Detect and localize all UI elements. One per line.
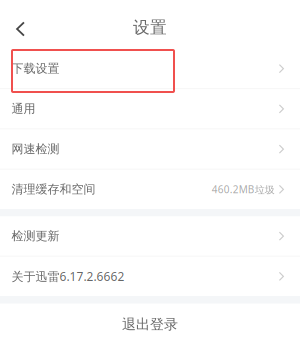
button[interactable]: 关于迅雷6.17.2.6662 xyxy=(0,257,300,296)
staticText: 设置 xyxy=(133,17,167,38)
button[interactable]: 网速检测 xyxy=(0,129,300,169)
button[interactable]: 退出登录 xyxy=(0,303,300,335)
staticText: 通用 xyxy=(11,101,35,116)
button[interactable]: Back xyxy=(0,0,41,53)
staticText: 检测更新 xyxy=(11,229,59,243)
staticText: 清理缓存和空间 xyxy=(11,182,95,197)
staticText: 下载设置 xyxy=(11,61,59,76)
staticText: 关于迅雷6.17.2.6662 xyxy=(11,268,124,284)
staticText: 网速检测 xyxy=(11,142,59,156)
button[interactable]: 清理缓存和空间 xyxy=(0,170,300,209)
button[interactable]: 检测更新 xyxy=(0,216,300,256)
button[interactable]: 通用 xyxy=(0,89,300,128)
button[interactable]: 下载设置 xyxy=(0,49,300,88)
staticText: 460.2MB垃圾 xyxy=(212,182,275,196)
staticText: 退出登录 xyxy=(122,315,178,333)
